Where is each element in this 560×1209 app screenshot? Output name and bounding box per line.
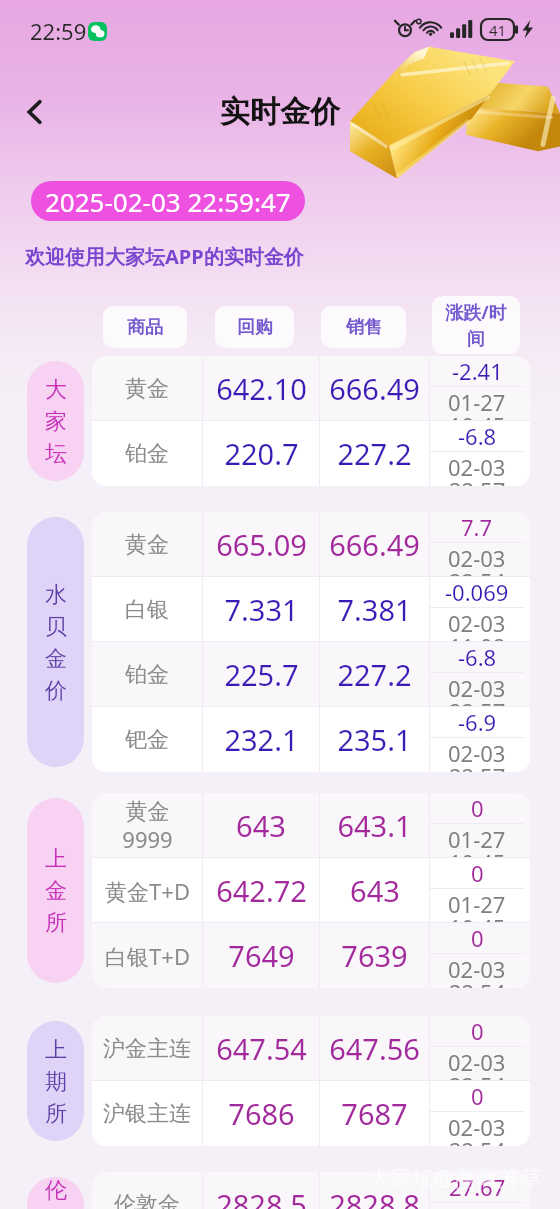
staticText: 伦敦金 bbox=[114, 1191, 180, 1209]
button[interactable]: 涨跌/时 间 bbox=[432, 296, 520, 354]
staticText: 0 bbox=[471, 923, 484, 953]
staticText: 铂金 bbox=[125, 440, 169, 468]
staticText: 227.2 bbox=[337, 655, 412, 694]
staticText: 7.7 bbox=[461, 512, 493, 542]
staticText: 225.7 bbox=[224, 655, 299, 694]
staticText: 7639 bbox=[341, 936, 408, 975]
staticText: 02-03 bbox=[448, 543, 506, 571]
staticText: 2828.5 bbox=[216, 1185, 307, 1209]
staticText: 666.49 bbox=[329, 525, 420, 564]
staticText: 黄金 bbox=[125, 375, 169, 403]
staticText: -0.069 bbox=[445, 577, 509, 607]
staticText: 钯金 bbox=[125, 726, 169, 754]
staticText: 232.1 bbox=[224, 720, 299, 759]
staticText: 铂金 bbox=[125, 661, 169, 689]
staticText: 22:57 bbox=[449, 475, 506, 486]
staticText: 643 bbox=[236, 806, 286, 845]
staticText: 22:54 bbox=[449, 566, 506, 577]
staticText: 02-03 bbox=[448, 954, 506, 982]
button[interactable]: 回购 bbox=[215, 306, 294, 348]
staticText: 643.1 bbox=[337, 806, 412, 845]
staticText: 642.72 bbox=[216, 871, 307, 910]
button[interactable]: 黄金 bbox=[92, 512, 530, 577]
staticText: 黄金T+D bbox=[105, 876, 190, 906]
staticText: 7686 bbox=[228, 1094, 295, 1133]
button[interactable]: 伦 敦 金 bbox=[27, 1177, 84, 1209]
staticText: 大家坛@离离芳草 bbox=[368, 1162, 542, 1192]
staticText: 2025-02-03 22:59:47 bbox=[45, 184, 291, 219]
staticText: 欢迎使用大家坛APP的实时金价 bbox=[25, 243, 304, 270]
staticText: 642.10 bbox=[216, 369, 307, 408]
staticText: 10:45 bbox=[449, 912, 506, 923]
button[interactable]: 黄金 bbox=[92, 356, 530, 421]
button[interactable]: 伦敦金 bbox=[92, 1172, 530, 1209]
staticText: 黄金 9999 bbox=[122, 798, 173, 854]
staticText: 220.7 bbox=[224, 434, 299, 473]
button[interactable]: 钯金 bbox=[92, 707, 530, 772]
button[interactable]: 铂金 bbox=[92, 642, 530, 707]
staticText: 7687 bbox=[341, 1094, 408, 1133]
button[interactable]: 水 贝 金 价 bbox=[27, 517, 84, 767]
staticText: 涨跌/时 间 bbox=[445, 300, 507, 350]
staticText: 01-27 bbox=[448, 889, 506, 917]
staticText: 22:59 bbox=[30, 16, 87, 46]
staticText: 11:08 bbox=[449, 631, 506, 642]
staticText: 上 期 所 bbox=[45, 1036, 67, 1127]
staticText: 666.49 bbox=[329, 369, 420, 408]
staticText: 02-03 bbox=[448, 673, 506, 701]
staticText: 22:54 bbox=[449, 1070, 506, 1081]
staticText: 22:54 bbox=[449, 977, 506, 988]
staticText: 22:57 bbox=[449, 761, 506, 772]
staticText: 22:54 bbox=[449, 1135, 506, 1146]
button[interactable]: 白银T+D bbox=[92, 923, 530, 988]
button[interactable]: 黄金 9999 bbox=[92, 793, 530, 858]
button[interactable]: 铂金 bbox=[92, 421, 530, 486]
staticText: 02-03 bbox=[448, 1112, 506, 1140]
staticText: 大 家 坛 bbox=[45, 376, 67, 467]
staticText: 7.331 bbox=[224, 590, 299, 629]
button[interactable]: 上 金 所 bbox=[27, 798, 84, 983]
staticText: 665.09 bbox=[216, 525, 307, 564]
button[interactable]: 大 家 坛 bbox=[27, 361, 84, 481]
staticText: 沪金主连 bbox=[103, 1035, 191, 1063]
staticText: 销售 bbox=[346, 316, 382, 339]
button[interactable]: 2025-02-03 22:59:47 bbox=[45, 181, 291, 221]
button[interactable]: 白银 bbox=[92, 577, 530, 642]
staticText: 10:45 bbox=[449, 410, 506, 421]
button[interactable]: Back bbox=[10, 86, 62, 138]
staticText: 白银 bbox=[125, 596, 169, 624]
button[interactable]: 沪金主连 bbox=[92, 1016, 530, 1081]
staticText: 水 贝 金 价 bbox=[45, 581, 67, 704]
staticText: 白银T+D bbox=[105, 941, 190, 971]
staticText: 647.56 bbox=[329, 1029, 420, 1068]
staticText: -6.8 bbox=[458, 642, 497, 672]
button[interactable]: 黄金T+D bbox=[92, 858, 530, 923]
staticText: 7649 bbox=[228, 936, 295, 975]
staticText: 235.1 bbox=[337, 720, 412, 759]
button[interactable]: 销售 bbox=[321, 306, 406, 348]
staticText: 27.67 bbox=[449, 1172, 506, 1202]
staticText: 上 金 所 bbox=[45, 845, 67, 936]
staticText: 实时金价 bbox=[220, 93, 340, 131]
button[interactable]: 沪银主连 bbox=[92, 1081, 530, 1146]
staticText: 0 bbox=[471, 1081, 484, 1111]
staticText: 回购 bbox=[237, 316, 273, 339]
staticText: 41 bbox=[489, 20, 507, 40]
button[interactable]: 上 期 所 bbox=[27, 1021, 84, 1141]
staticText: 01-27 bbox=[448, 387, 506, 415]
staticText: 2828.8 bbox=[329, 1185, 420, 1209]
staticText: 02-03 bbox=[448, 738, 506, 766]
staticText: 伦 敦 金 bbox=[45, 1177, 67, 1209]
button[interactable]: 商品 bbox=[103, 306, 187, 348]
staticText: 0 bbox=[471, 793, 484, 823]
staticText: 10:45 bbox=[449, 847, 506, 858]
staticText: 0 bbox=[471, 858, 484, 888]
staticText: 0 bbox=[471, 1016, 484, 1046]
staticText: 227.2 bbox=[337, 434, 412, 473]
staticText: 01-27 bbox=[448, 824, 506, 852]
staticText: 22:57 bbox=[449, 696, 506, 707]
staticText: 黄金 bbox=[125, 531, 169, 559]
staticText: 02-03 bbox=[448, 608, 506, 636]
staticText: 643 bbox=[350, 871, 400, 910]
